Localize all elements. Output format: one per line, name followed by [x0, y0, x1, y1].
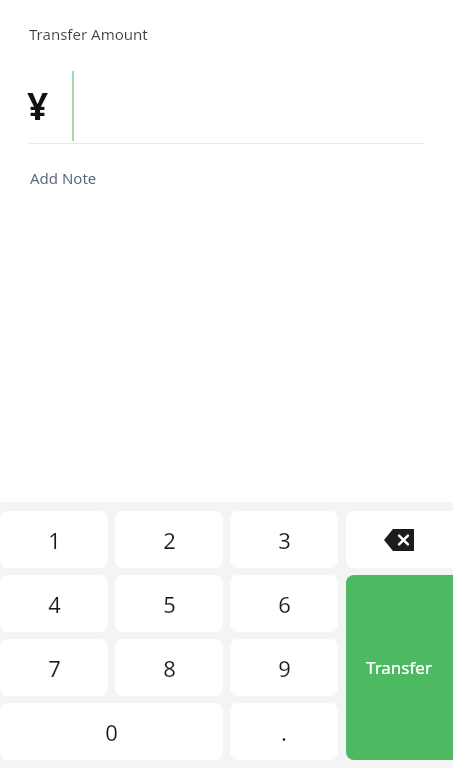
- staticText: Transfer: [366, 656, 432, 679]
- staticText: 8: [163, 653, 176, 683]
- button[interactable]: Backspace: [346, 511, 453, 568]
- staticText: 9: [278, 653, 291, 683]
- staticText: 1: [48, 525, 61, 555]
- staticText: Transfer Amount: [29, 24, 148, 44]
- button[interactable]: 6: [230, 575, 338, 632]
- button[interactable]: 8: [115, 639, 223, 696]
- staticText: 0: [105, 717, 118, 747]
- staticText: 5: [163, 589, 176, 619]
- staticText: 7: [48, 653, 61, 683]
- button[interactable]: 2: [115, 511, 223, 568]
- staticText: Add Note: [30, 168, 97, 188]
- staticText: ¥: [27, 80, 49, 130]
- button[interactable]: 1: [0, 511, 108, 568]
- staticText: 4: [48, 589, 61, 619]
- button[interactable]: .: [230, 703, 338, 760]
- button[interactable]: 3: [230, 511, 338, 568]
- staticText: 6: [278, 589, 291, 619]
- button[interactable]: Transfer: [346, 575, 453, 760]
- staticText: .: [281, 717, 287, 747]
- button[interactable]: 5: [115, 575, 223, 632]
- button[interactable]: Add Note: [29, 166, 98, 190]
- staticText: 2: [163, 525, 176, 555]
- button[interactable]: 7: [0, 639, 108, 696]
- button[interactable]: 9: [230, 639, 338, 696]
- staticText: 3: [278, 525, 291, 555]
- button[interactable]: 0: [0, 703, 223, 760]
- button[interactable]: 4: [0, 575, 108, 632]
